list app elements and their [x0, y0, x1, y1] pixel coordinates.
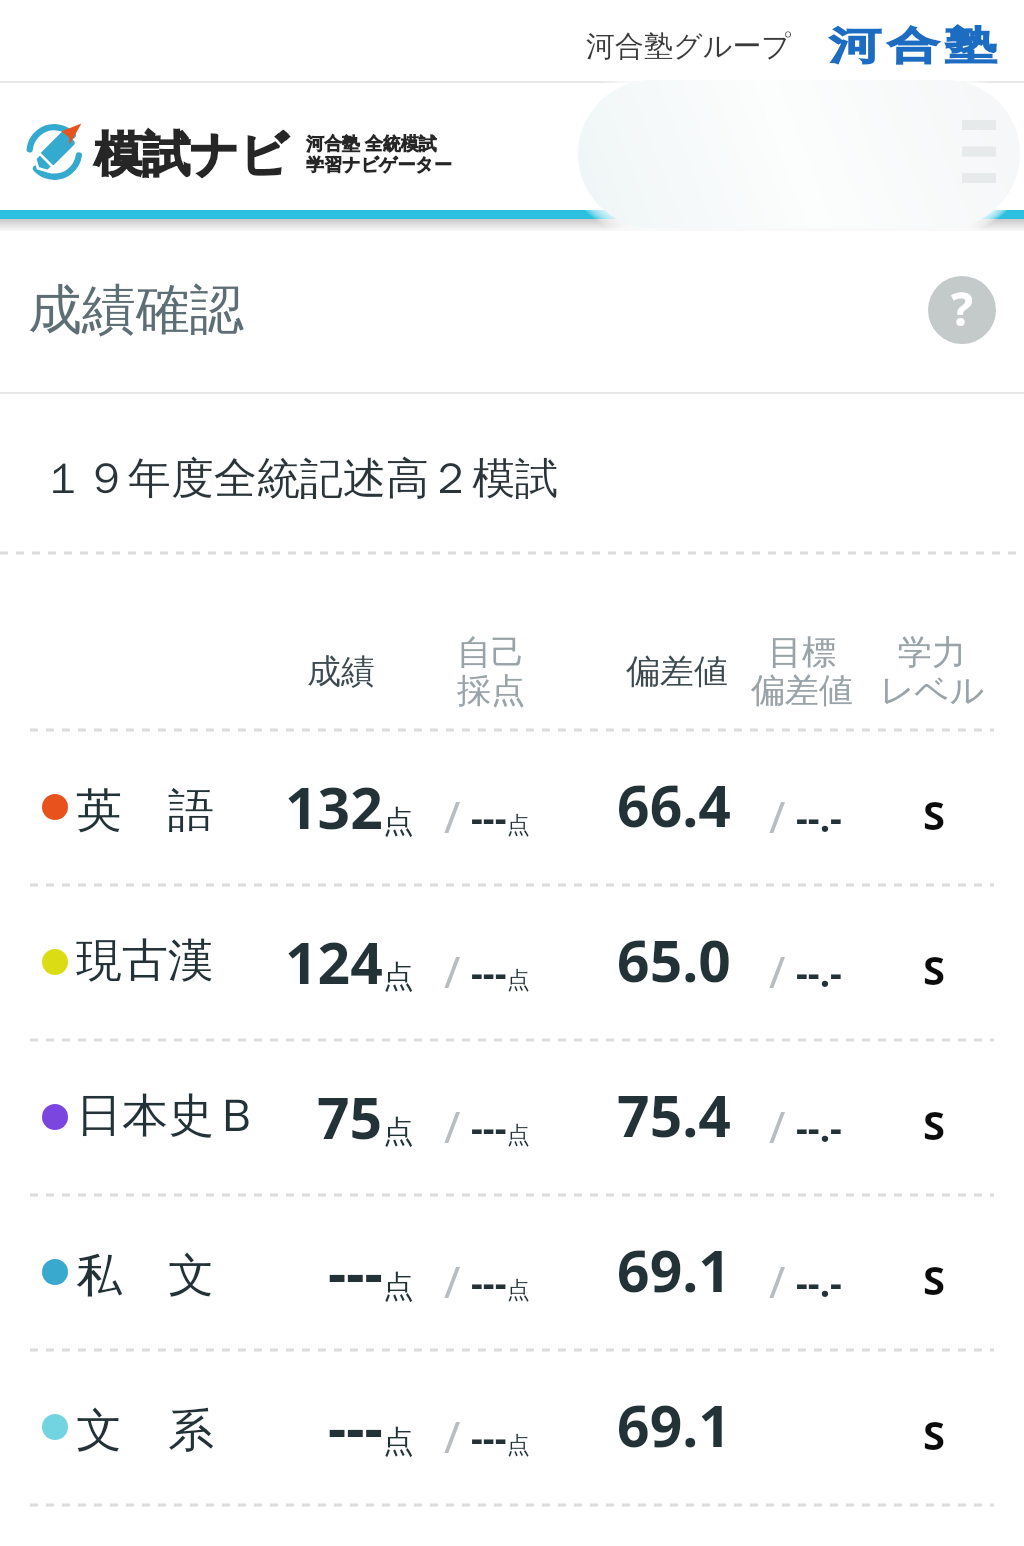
staticText: 成績確認 — [28, 276, 244, 344]
staticText: 偏差値 — [557, 650, 797, 693]
staticText: 点 — [383, 1422, 414, 1461]
staticText: 点 — [507, 1431, 530, 1460]
staticText: S — [923, 942, 946, 996]
staticText: 点 — [383, 1112, 414, 1151]
staticText: 75.4 — [574, 1076, 774, 1154]
staticText: 点 — [507, 1276, 530, 1305]
staticText: 点 — [507, 966, 530, 995]
staticText: 文 系 — [76, 1397, 214, 1460]
staticText: 点 — [383, 802, 414, 841]
staticText: S — [923, 787, 946, 841]
staticText: / — [444, 941, 461, 1001]
button[interactable]: 日本史Ｂ — [0, 1040, 1024, 1193]
staticText: / — [769, 1251, 786, 1311]
staticText: 目標 — [682, 631, 922, 674]
staticText: 塾 — [945, 22, 997, 71]
staticText: 69.1 — [574, 1231, 774, 1309]
staticText: --.- — [796, 1257, 842, 1307]
staticText: 学力 — [812, 631, 1024, 674]
button[interactable]: 私 文 — [0, 1195, 1024, 1348]
staticText: --.- — [796, 792, 842, 842]
staticText: 偏差値 — [682, 669, 922, 712]
staticText: S — [923, 1407, 946, 1461]
button[interactable]: 河合塾グループ — [574, 6, 1014, 76]
staticText: / — [444, 1406, 461, 1466]
staticText: --- — [471, 1102, 507, 1152]
staticText: --- — [471, 792, 507, 842]
staticText: 私 文 — [76, 1242, 214, 1305]
staticText: 模試ナビ — [94, 125, 289, 185]
staticText: / — [769, 1096, 786, 1156]
staticText: / — [444, 1096, 461, 1156]
staticText: 65.0 — [574, 921, 774, 999]
staticText: 69.1 — [574, 1386, 774, 1464]
staticText: 河合塾グループ — [586, 28, 792, 65]
staticText: / — [444, 786, 461, 846]
staticText: 採点 — [371, 669, 611, 712]
staticText: 点 — [383, 1267, 414, 1306]
staticText: / — [769, 786, 786, 846]
staticText: 点 — [383, 957, 414, 996]
staticText: 66.4 — [574, 766, 774, 844]
staticText: / — [769, 941, 786, 1001]
staticText: 124 — [285, 923, 383, 1001]
staticText: 成績 — [221, 650, 461, 693]
staticText: 英 語 — [76, 777, 214, 840]
staticText: / — [444, 1251, 461, 1311]
staticText: １９年度全統記述高２模試 — [42, 452, 558, 506]
button[interactable]: 文 系 — [0, 1350, 1024, 1503]
staticText: レベル — [812, 669, 1024, 712]
staticText: 河合塾 全統模試 — [306, 131, 437, 156]
staticText: 自己 — [371, 631, 611, 674]
staticText: 75 — [317, 1078, 383, 1156]
staticText: 合 — [887, 22, 939, 71]
staticText: --- — [471, 947, 507, 997]
staticText: S — [923, 1252, 946, 1306]
staticText: --.- — [796, 947, 842, 997]
staticText: 132 — [285, 768, 383, 846]
staticText: --- — [471, 1257, 507, 1307]
button[interactable]: 模試ナビ ホーム — [18, 108, 498, 192]
staticText: 現古漢 — [76, 932, 214, 990]
button[interactable]: Help — [928, 276, 996, 344]
staticText: 日本史Ｂ — [76, 1087, 260, 1145]
staticText: --- — [471, 1412, 507, 1462]
button[interactable]: 現古漢 — [0, 885, 1024, 1038]
staticText: 点 — [507, 1121, 530, 1150]
staticText: ? — [951, 277, 973, 340]
button[interactable]: 英 語 — [0, 730, 1024, 883]
staticText: --.- — [796, 1102, 842, 1152]
button[interactable]: Menu — [944, 100, 1016, 172]
staticText: 河 — [829, 22, 881, 71]
staticText: 学習ナビゲーター — [306, 154, 452, 177]
staticText: --- — [328, 1233, 383, 1311]
staticText: S — [923, 1097, 946, 1151]
staticText: --- — [328, 1388, 383, 1466]
staticText: 点 — [507, 811, 530, 840]
